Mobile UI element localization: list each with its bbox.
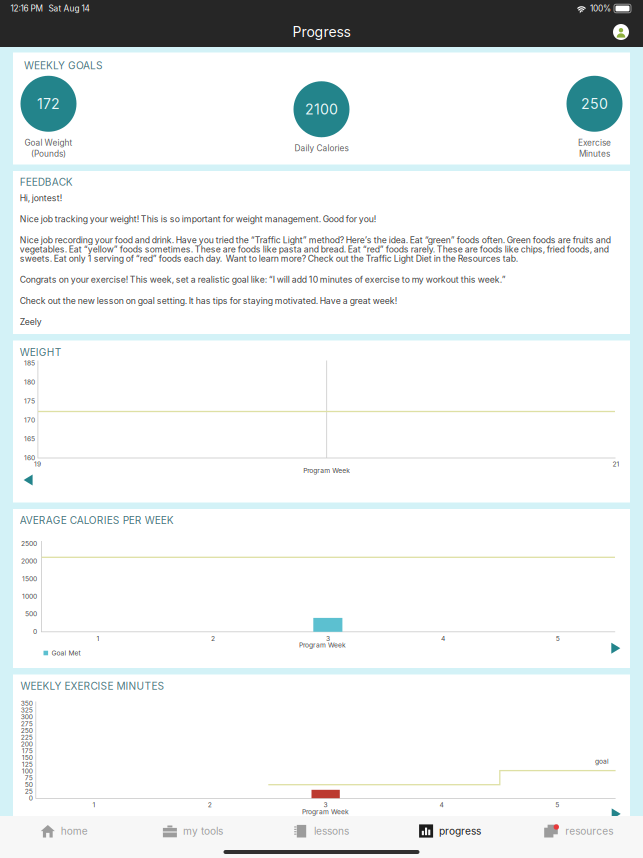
staticText: 3	[324, 801, 328, 809]
staticText: 175	[22, 747, 33, 755]
staticText: 165	[24, 435, 35, 443]
staticText: 325	[21, 706, 33, 714]
staticText: Congrats on your exercise! This week, se…	[20, 274, 506, 285]
staticText: 75	[25, 774, 33, 782]
staticText: 250	[21, 726, 33, 734]
button[interactable]: resources	[514, 816, 643, 846]
staticText: 350	[21, 699, 33, 707]
button[interactable]: Next weeks	[607, 639, 623, 655]
staticText: 50	[25, 781, 33, 789]
staticText: 12:16 PM	[11, 3, 43, 13]
staticText: 1500	[22, 575, 37, 583]
staticText: FEEDBACK	[20, 176, 73, 188]
staticText: home	[61, 825, 88, 837]
staticText: 175	[24, 397, 35, 405]
staticText: 5	[555, 801, 559, 809]
staticText: 2000	[21, 557, 37, 565]
staticText: 185	[24, 359, 35, 367]
button[interactable]: home	[0, 816, 129, 846]
staticText: 250	[581, 95, 608, 112]
staticText: AVERAGE CALORIES PER WEEK	[20, 514, 174, 526]
staticText: Nice job recording your food and drink. …	[20, 235, 611, 264]
staticText: Zeely	[20, 317, 42, 327]
staticText: 19	[34, 460, 41, 468]
staticText: 300	[21, 713, 33, 721]
staticText: 170	[24, 416, 35, 424]
staticText: 1	[92, 801, 95, 809]
staticText: Nice job tracking your weight! This is s…	[20, 214, 376, 224]
staticText: WEEKLY EXERCISE MINUTES	[20, 680, 164, 692]
staticText: 4	[441, 634, 445, 643]
staticText: 5	[556, 634, 560, 643]
staticText: 275	[21, 720, 33, 728]
staticText: 100	[22, 767, 33, 775]
staticText: 1000	[22, 592, 37, 600]
staticText: WEEKLY GOALS	[24, 59, 103, 72]
staticText: Progress	[292, 23, 350, 40]
staticText: Daily Calories	[294, 143, 348, 153]
staticText: 1	[97, 634, 100, 643]
staticText: Sat Aug 14	[49, 3, 90, 13]
staticText: my tools	[183, 825, 223, 837]
button[interactable]: progress	[386, 816, 514, 846]
button[interactable]: lessons	[257, 816, 386, 846]
staticText: 0	[29, 794, 33, 802]
staticText: Program Week	[299, 641, 346, 649]
staticText: 3	[326, 634, 330, 643]
staticText: 172	[37, 95, 60, 112]
staticText: Check out the new lesson on goal setting…	[20, 295, 397, 306]
staticText: Hi, jontest!	[20, 193, 62, 203]
staticText: goal	[595, 757, 609, 765]
staticText: Exercise	[578, 138, 611, 148]
button[interactable]: my tools	[129, 816, 257, 846]
staticText: (Pounds)	[31, 149, 66, 159]
staticText: WEIGHT	[20, 346, 62, 358]
staticText: 2100	[305, 101, 338, 118]
staticText: Program Week	[302, 808, 349, 816]
staticText: 150	[22, 753, 33, 762]
staticText: 21	[612, 460, 619, 468]
staticText: 0	[33, 627, 37, 636]
staticText: 225	[21, 733, 33, 741]
staticText: Goal Met	[51, 649, 80, 657]
staticText: 4	[439, 801, 443, 809]
staticText: resources	[565, 825, 613, 837]
staticText: 160	[24, 454, 35, 462]
staticText: 125	[22, 760, 33, 768]
staticText: 25	[25, 787, 33, 795]
button[interactable]: Previous weeks	[20, 470, 36, 488]
staticText: lessons	[314, 825, 349, 837]
staticText: Program Week	[303, 466, 350, 475]
staticText: 2	[211, 634, 215, 643]
staticText: Goal Weight	[24, 138, 72, 148]
staticText: progress	[439, 825, 481, 837]
button[interactable]: Account	[610, 21, 632, 43]
staticText: 2500	[21, 540, 37, 548]
staticText: Minutes	[579, 149, 610, 159]
staticText: 180	[24, 378, 35, 386]
staticText: 500	[25, 610, 37, 618]
button[interactable]: Next weeks	[608, 804, 624, 822]
staticText: 200	[21, 740, 33, 748]
staticText: 100%	[590, 3, 611, 13]
staticText: 2	[208, 801, 212, 809]
